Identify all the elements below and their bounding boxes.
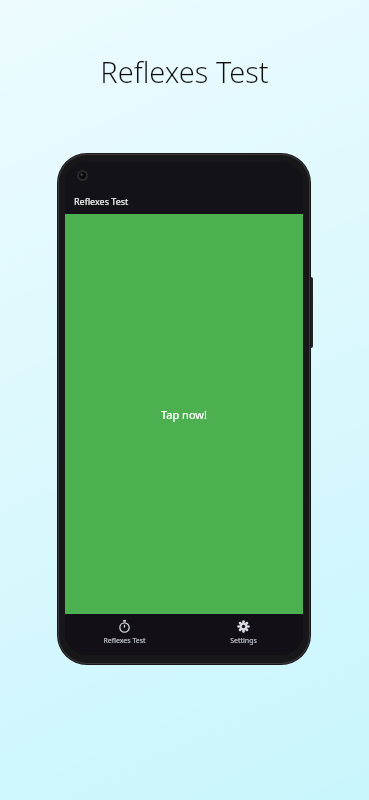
button[interactable]: Settings [184, 614, 303, 655]
staticText: Tap now! [161, 407, 207, 422]
button[interactable]: Reflexes Test [65, 614, 184, 655]
staticText: Reflexes Test [103, 636, 146, 646]
staticText: Reflexes Test [74, 195, 129, 207]
staticText: Settings [230, 636, 257, 646]
staticText: Reflexes Test [0, 52, 369, 91]
button[interactable]: Tap now! [65, 214, 303, 614]
